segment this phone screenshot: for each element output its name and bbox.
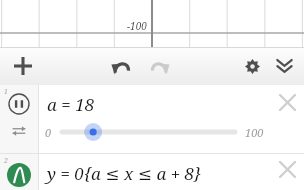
staticText: 2 (4, 156, 8, 166)
button[interactable]: Undo (104, 50, 136, 82)
button[interactable]: Toggle graph 2 (6, 162, 32, 188)
button[interactable]: Add expression (6, 49, 40, 83)
button[interactable]: Redo (144, 50, 176, 82)
button[interactable]: Settings (236, 50, 268, 82)
staticText: y = 0{a ≤ x ≤ a + 8} (47, 162, 202, 185)
staticText: -100 (127, 19, 147, 33)
button[interactable]: Delete expression 1 (270, 85, 304, 153)
staticText: a = 18 (47, 93, 95, 116)
staticText: 0 (45, 125, 52, 140)
staticText: 1 (4, 87, 8, 97)
staticText: 100 (245, 125, 264, 140)
button[interactable]: Loop direction (7, 119, 31, 143)
button[interactable]: Delete expression 2 (270, 154, 304, 190)
button[interactable] (58, 121, 239, 143)
button[interactable]: Collapse (268, 50, 300, 82)
button[interactable]: Pause animation (6, 91, 32, 117)
